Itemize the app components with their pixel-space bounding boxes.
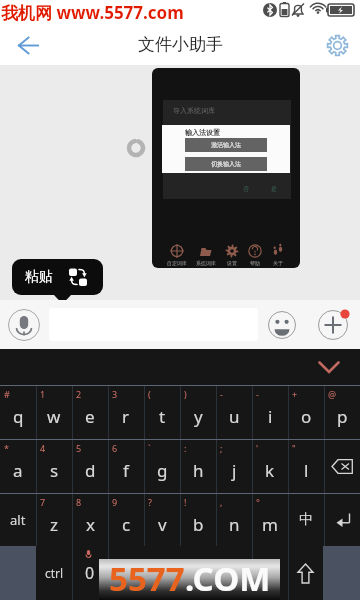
staticText: r — [122, 405, 130, 428]
button[interactable]: 6 — [108, 440, 144, 493]
staticText: 5577 — [109, 556, 185, 597]
button[interactable]: Back — [0, 26, 50, 65]
staticText: c — [122, 513, 131, 536]
button[interactable]: ( — [144, 386, 180, 439]
staticText: ' — [256, 442, 259, 454]
button[interactable]: ; — [216, 440, 252, 493]
staticText: @ — [328, 388, 337, 400]
staticText: i — [268, 405, 273, 428]
button[interactable]: + — [288, 386, 324, 439]
button[interactable]: 9 — [108, 494, 144, 546]
staticText: ctrl — [45, 565, 64, 581]
button[interactable]: : — [180, 440, 216, 493]
staticText: # — [4, 388, 10, 400]
staticText: - — [220, 388, 223, 400]
button[interactable]: 中 — [288, 494, 324, 546]
button[interactable]: Voice input — [7, 308, 41, 342]
button[interactable]: Screenshot image — [152, 68, 300, 268]
staticText: - — [256, 388, 259, 400]
staticText: ( — [148, 388, 151, 400]
button[interactable]: Space — [108, 546, 252, 600]
staticText: " — [292, 442, 296, 454]
button[interactable]: * — [0, 440, 36, 493]
staticText: 中 — [299, 511, 313, 529]
staticText: 8 — [76, 496, 82, 508]
button[interactable]: ) — [180, 386, 216, 439]
button[interactable]: alt — [0, 494, 36, 546]
staticText: 6 — [112, 442, 118, 454]
staticText: ! — [184, 496, 187, 508]
staticText: , — [220, 496, 223, 508]
button[interactable]: - — [216, 386, 252, 439]
button[interactable]: 8 — [72, 494, 108, 546]
staticText: w — [47, 405, 61, 428]
button[interactable]: Shift — [288, 546, 323, 600]
button[interactable]: " — [288, 440, 324, 493]
staticText: z — [50, 513, 58, 536]
other: Enter — [333, 511, 352, 530]
button[interactable]: ' — [252, 440, 288, 493]
button[interactable]: ? — [144, 494, 180, 546]
button[interactable]: 5 — [72, 440, 108, 493]
staticText: 2 — [76, 388, 82, 400]
staticText: ° — [256, 496, 260, 508]
staticText: ` — [148, 442, 151, 454]
button[interactable]: # — [0, 386, 36, 439]
button[interactable]: Hide keyboard — [314, 355, 344, 379]
staticText: 是 — [271, 185, 277, 193]
staticText: .COM — [185, 556, 271, 597]
button[interactable]: ° — [252, 494, 288, 546]
staticText: p — [337, 405, 348, 428]
staticText: 切换输入法 — [211, 160, 241, 168]
button[interactable]: 3 — [108, 386, 144, 439]
staticText: 系统词库 — [196, 260, 216, 266]
button[interactable]: Settings — [316, 26, 360, 65]
staticText: 帮助 — [250, 260, 260, 266]
button[interactable]: Enter — [324, 494, 360, 546]
button[interactable]: n — [252, 546, 288, 600]
staticText: 4 — [40, 442, 46, 454]
button[interactable]: ctrl — [36, 546, 72, 600]
button[interactable]: , — [216, 494, 252, 546]
staticText: e — [85, 405, 95, 428]
staticText: g — [157, 459, 168, 482]
staticText: q — [13, 405, 24, 428]
button[interactable]: 2 — [72, 386, 108, 439]
staticText: 粘贴 — [25, 268, 53, 286]
staticText: ) — [184, 388, 187, 400]
staticText: x — [86, 513, 95, 536]
button[interactable]: More actions — [316, 308, 350, 342]
staticText: v — [158, 513, 167, 536]
staticText: y — [194, 405, 203, 428]
button[interactable]: 4 — [36, 440, 72, 493]
staticText: 激活输入法 — [211, 141, 241, 149]
button[interactable]: - — [252, 386, 288, 439]
staticText: 否 — [243, 185, 249, 193]
staticText: d — [85, 459, 96, 482]
staticText: h — [193, 459, 204, 482]
button[interactable]: 粘贴 — [12, 259, 103, 295]
staticText: u — [229, 405, 240, 428]
button[interactable]: Backspace — [324, 440, 360, 493]
button[interactable]: ` — [144, 440, 180, 493]
staticText: : — [184, 442, 187, 454]
button[interactable]: 0 — [72, 546, 108, 600]
staticText: 导入系统词库 — [173, 106, 215, 115]
button[interactable]: @ — [324, 386, 360, 439]
staticText: f — [123, 459, 129, 482]
button[interactable]: Emoji — [267, 310, 297, 340]
staticText: * — [4, 442, 9, 454]
staticText: 0 — [85, 562, 95, 584]
staticText: 设置 — [227, 260, 237, 266]
staticText: o — [301, 405, 312, 428]
button[interactable]: ! — [180, 494, 216, 546]
staticText: 1 — [40, 388, 46, 400]
staticText: ? — [148, 496, 152, 508]
staticText: b — [193, 513, 204, 536]
button[interactable]: 7 — [36, 494, 72, 546]
staticText: a — [13, 459, 23, 482]
button[interactable]: 1 — [36, 386, 72, 439]
staticText: s — [50, 459, 59, 482]
staticText: 5 — [76, 442, 82, 454]
